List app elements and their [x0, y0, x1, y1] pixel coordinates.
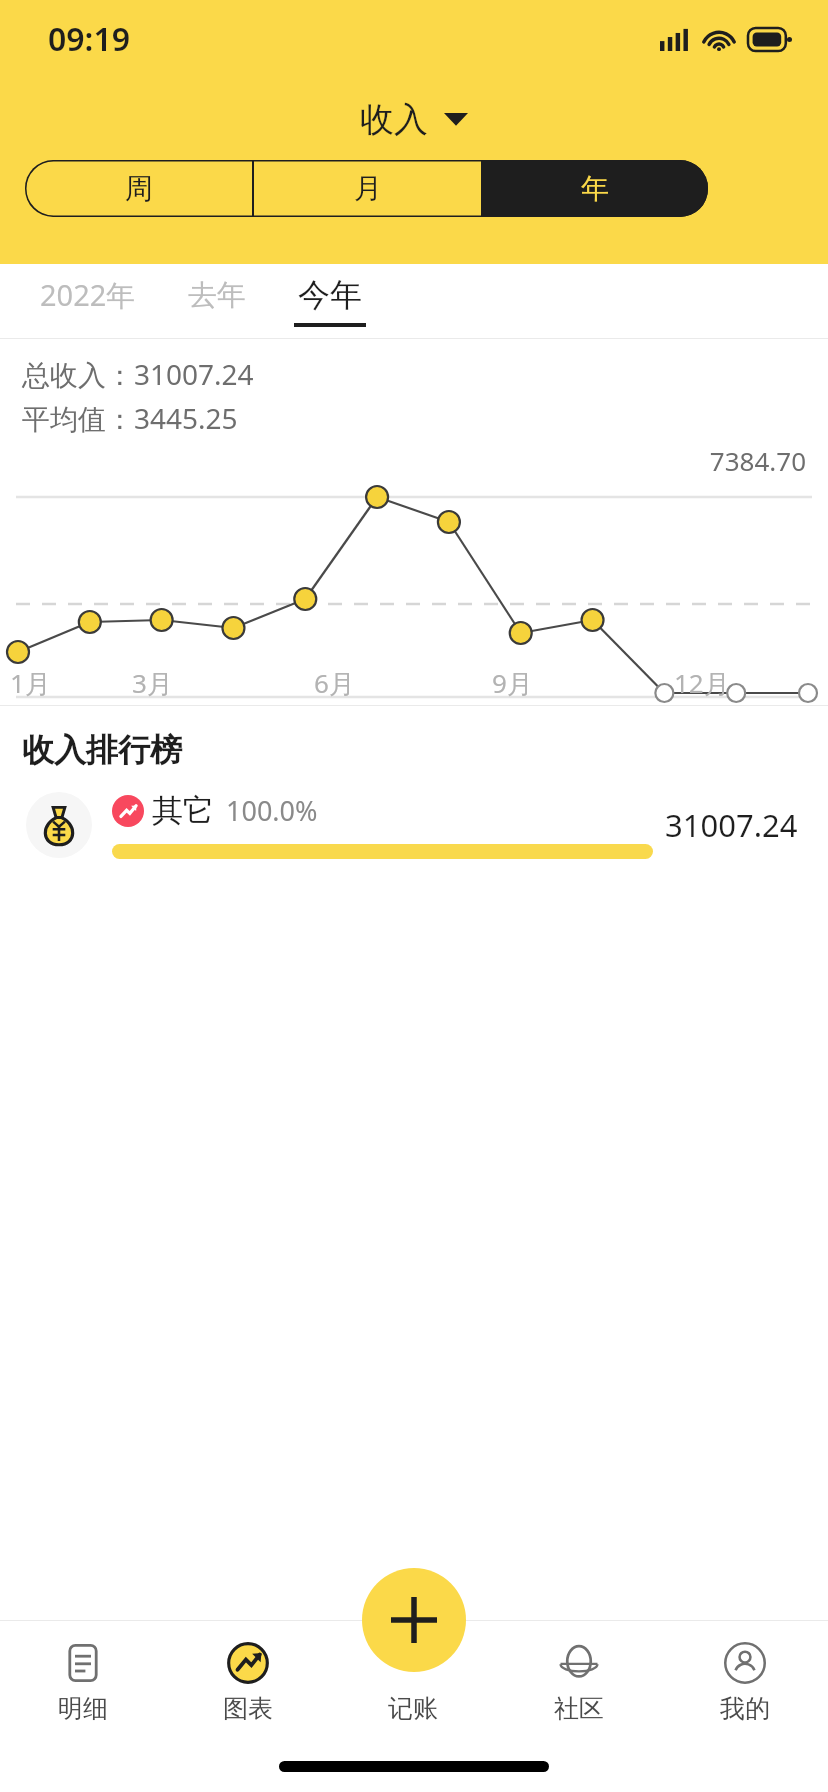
- staticText: 2022年: [40, 275, 136, 315]
- staticText: 12月: [674, 665, 730, 701]
- button[interactable]: 记账: [330, 1621, 496, 1737]
- button[interactable]: 明细: [0, 1621, 165, 1737]
- staticText: 9月: [492, 665, 533, 701]
- staticText: 7384.70: [0, 443, 806, 478]
- staticText: 09:19: [48, 17, 131, 61]
- button[interactable]: 年: [481, 160, 708, 217]
- staticText: 6月: [314, 665, 355, 701]
- staticText: 去年: [188, 277, 246, 314]
- button[interactable]: 我的: [662, 1621, 828, 1737]
- staticText: 收入排行榜: [22, 730, 182, 770]
- staticText: 月: [354, 171, 382, 206]
- staticText: 3月: [132, 665, 173, 701]
- staticText: 1月: [10, 665, 51, 701]
- button[interactable]: 月: [254, 160, 481, 217]
- staticText: 其它: [152, 791, 214, 830]
- button[interactable]: 记账 添加: [362, 1568, 466, 1672]
- button[interactable]: 图表: [165, 1621, 330, 1737]
- button[interactable]: 社区: [496, 1621, 662, 1737]
- staticText: 平均值：3445.25: [22, 399, 238, 437]
- staticText: 31007.24: [665, 804, 798, 846]
- button[interactable]: 今年: [290, 275, 370, 327]
- staticText: 年: [581, 171, 609, 206]
- button[interactable]: 周: [25, 160, 252, 217]
- staticText: 社区: [554, 1693, 604, 1724]
- button[interactable]: 2022年: [32, 275, 144, 327]
- staticText: 今年: [298, 275, 362, 315]
- staticText: 明细: [58, 1693, 108, 1724]
- button[interactable]: 其它: [0, 770, 828, 880]
- staticText: 100.0%: [226, 792, 318, 829]
- staticText: 收入: [360, 98, 428, 141]
- staticText: 记账: [388, 1693, 438, 1724]
- button[interactable]: 去年: [180, 277, 254, 326]
- staticText: 周: [125, 171, 153, 206]
- staticText: 总收入：31007.24: [22, 355, 254, 393]
- button[interactable]: 收入: [0, 78, 828, 160]
- staticText: 图表: [223, 1693, 273, 1724]
- staticText: 我的: [720, 1693, 770, 1724]
